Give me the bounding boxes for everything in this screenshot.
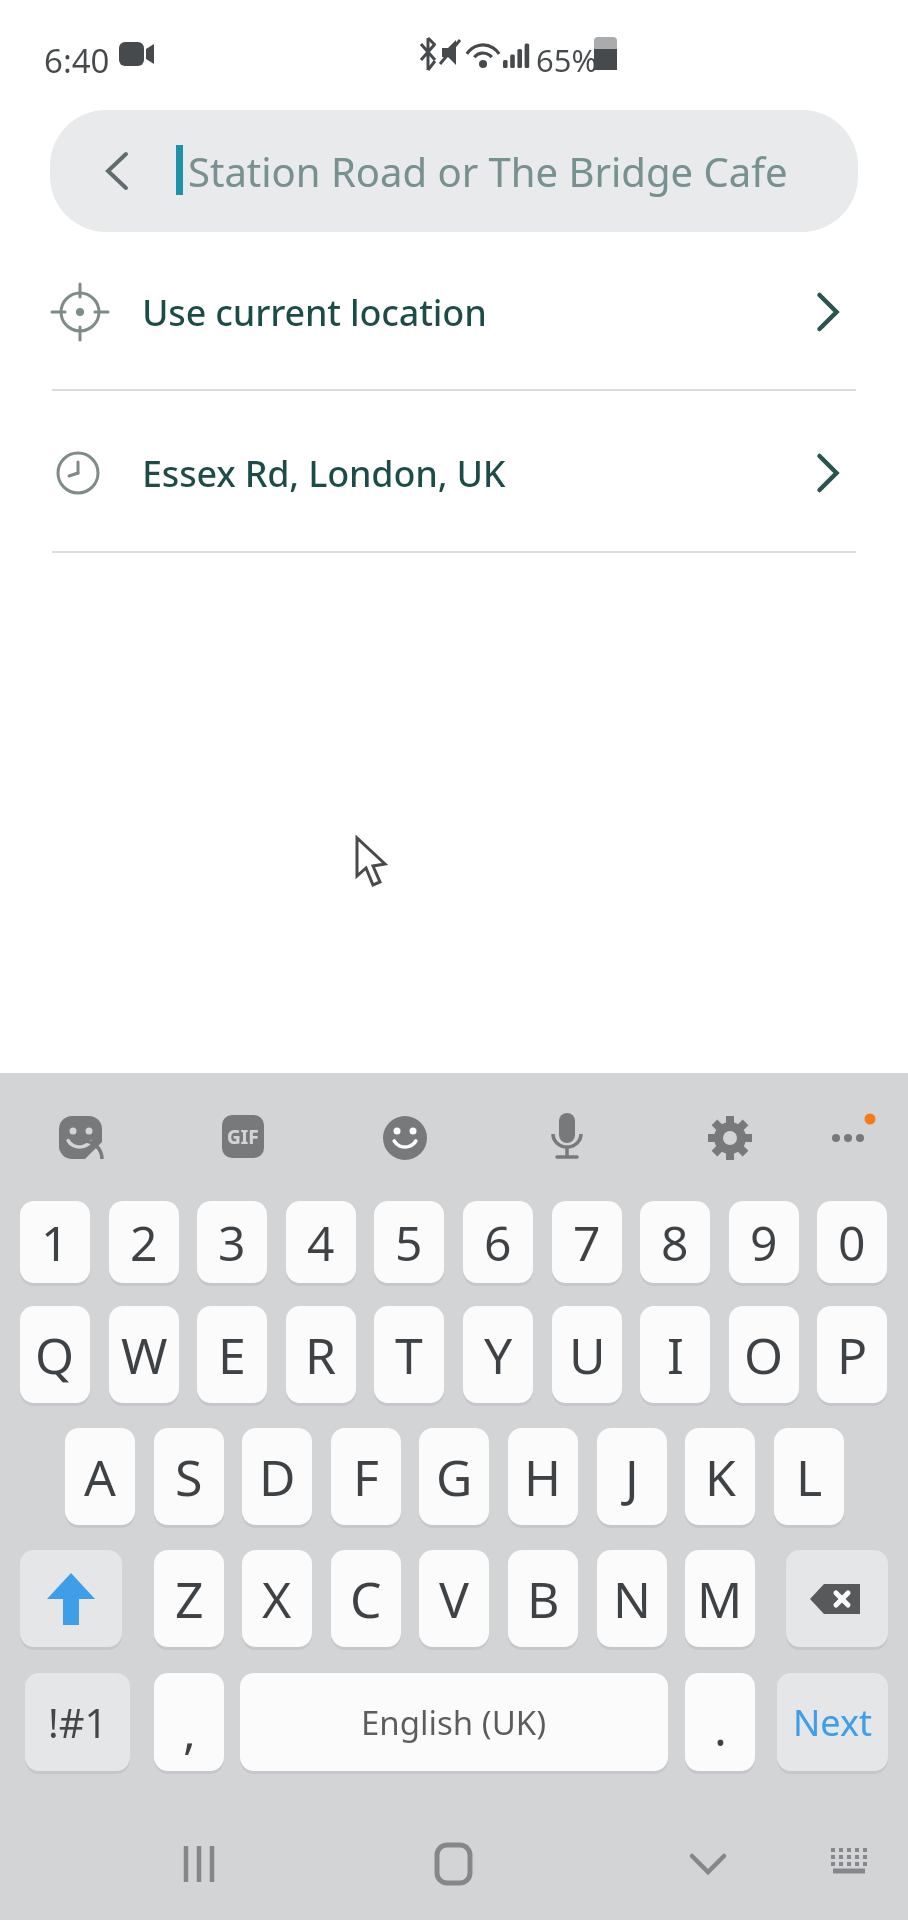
- button[interactable]: [212, 1108, 272, 1168]
- button[interactable]: 4: [286, 1201, 356, 1283]
- button[interactable]: .: [685, 1673, 755, 1771]
- button[interactable]: S: [154, 1428, 224, 1525]
- button[interactable]: A: [65, 1428, 135, 1525]
- button[interactable]: N: [597, 1550, 667, 1647]
- staticText: 7: [573, 1210, 601, 1275]
- button[interactable]: U: [552, 1306, 622, 1403]
- staticText: 4: [307, 1210, 335, 1275]
- button[interactable]: [418, 1829, 488, 1899]
- staticText: S: [175, 1443, 203, 1511]
- button[interactable]: [50, 1108, 110, 1168]
- staticText: N: [613, 1565, 651, 1633]
- button[interactable]: [786, 1550, 888, 1647]
- button[interactable]: T: [374, 1306, 444, 1403]
- button[interactable]: [20, 1550, 122, 1647]
- button[interactable]: 6: [463, 1201, 533, 1283]
- staticText: .: [714, 1695, 727, 1760]
- button[interactable]: X: [242, 1550, 312, 1647]
- staticText: GIF: [227, 1124, 259, 1150]
- staticText: R: [305, 1321, 337, 1389]
- staticText: X: [262, 1565, 292, 1633]
- button[interactable]: Next: [777, 1673, 888, 1771]
- button[interactable]: [700, 1108, 760, 1168]
- staticText: 6:40: [44, 38, 110, 83]
- button[interactable]: Station Road or The Bridge Cafe: [50, 110, 858, 232]
- button[interactable]: B: [508, 1550, 578, 1647]
- staticText: Station Road or The Bridge Cafe: [188, 144, 788, 198]
- staticText: !#1: [48, 1695, 108, 1749]
- button[interactable]: 8: [640, 1201, 710, 1283]
- staticText: English (UK): [361, 1700, 547, 1745]
- staticText: Next: [793, 1698, 872, 1747]
- button[interactable]: J: [597, 1428, 667, 1525]
- staticText: G: [436, 1443, 473, 1511]
- button[interactable]: I: [640, 1306, 710, 1403]
- staticText: 2: [130, 1210, 158, 1275]
- button[interactable]: Essex Rd, London, UK: [0, 404, 908, 542]
- button[interactable]: 2: [109, 1201, 179, 1283]
- staticText: K: [705, 1443, 736, 1511]
- button[interactable]: D: [242, 1428, 312, 1525]
- staticText: U: [569, 1321, 606, 1389]
- button[interactable]: [86, 142, 144, 200]
- button[interactable]: [537, 1108, 597, 1168]
- staticText: 9: [750, 1210, 778, 1275]
- staticText: 65%: [536, 39, 598, 81]
- button[interactable]: [818, 1108, 878, 1168]
- button[interactable]: !#1: [25, 1673, 130, 1771]
- staticText: Y: [484, 1321, 513, 1389]
- staticText: B: [527, 1565, 560, 1633]
- button[interactable]: E: [197, 1306, 267, 1403]
- staticText: I: [667, 1321, 684, 1389]
- button[interactable]: [375, 1108, 435, 1168]
- button[interactable]: G: [419, 1428, 489, 1525]
- button[interactable]: R: [286, 1306, 356, 1403]
- staticText: ,: [183, 1698, 196, 1763]
- button[interactable]: Q: [20, 1306, 90, 1403]
- button[interactable]: ,: [154, 1673, 224, 1771]
- staticText: 0: [838, 1210, 866, 1275]
- button[interactable]: L: [774, 1428, 844, 1525]
- button[interactable]: P: [817, 1306, 887, 1403]
- button[interactable]: F: [331, 1428, 401, 1525]
- staticText: H: [524, 1443, 562, 1511]
- button[interactable]: Use current location: [0, 243, 908, 381]
- staticText: Q: [35, 1321, 75, 1389]
- staticText: L: [796, 1443, 823, 1511]
- button[interactable]: Y: [463, 1306, 533, 1403]
- button[interactable]: [165, 1829, 235, 1899]
- button[interactable]: 7: [552, 1201, 622, 1283]
- staticText: T: [395, 1321, 423, 1389]
- button[interactable]: H: [508, 1428, 578, 1525]
- staticText: C: [350, 1565, 382, 1633]
- staticText: 8: [661, 1210, 689, 1275]
- button[interactable]: 0: [817, 1201, 887, 1283]
- staticText: J: [625, 1443, 639, 1511]
- staticText: Use current location: [142, 288, 487, 337]
- button[interactable]: V: [419, 1550, 489, 1647]
- staticText: D: [259, 1443, 296, 1511]
- button[interactable]: C: [331, 1550, 401, 1647]
- button[interactable]: 5: [374, 1201, 444, 1283]
- button[interactable]: 1: [20, 1201, 90, 1283]
- staticText: V: [439, 1565, 469, 1633]
- staticText: Z: [175, 1565, 204, 1633]
- button[interactable]: K: [685, 1428, 755, 1525]
- button[interactable]: English (UK): [240, 1673, 668, 1771]
- staticText: P: [837, 1321, 868, 1389]
- button[interactable]: 9: [729, 1201, 799, 1283]
- button[interactable]: [814, 1829, 884, 1899]
- button[interactable]: [673, 1829, 743, 1899]
- staticText: F: [353, 1443, 379, 1511]
- staticText: 1: [41, 1210, 69, 1275]
- staticText: 6: [484, 1210, 512, 1275]
- staticText: E: [218, 1321, 246, 1389]
- button[interactable]: 3: [197, 1201, 267, 1283]
- button[interactable]: Z: [154, 1550, 224, 1647]
- button[interactable]: W: [109, 1306, 179, 1403]
- staticText: A: [84, 1443, 116, 1511]
- button[interactable]: O: [729, 1306, 799, 1403]
- staticText: Essex Rd, London, UK: [142, 449, 506, 498]
- staticText: M: [697, 1565, 743, 1633]
- button[interactable]: M: [685, 1550, 755, 1647]
